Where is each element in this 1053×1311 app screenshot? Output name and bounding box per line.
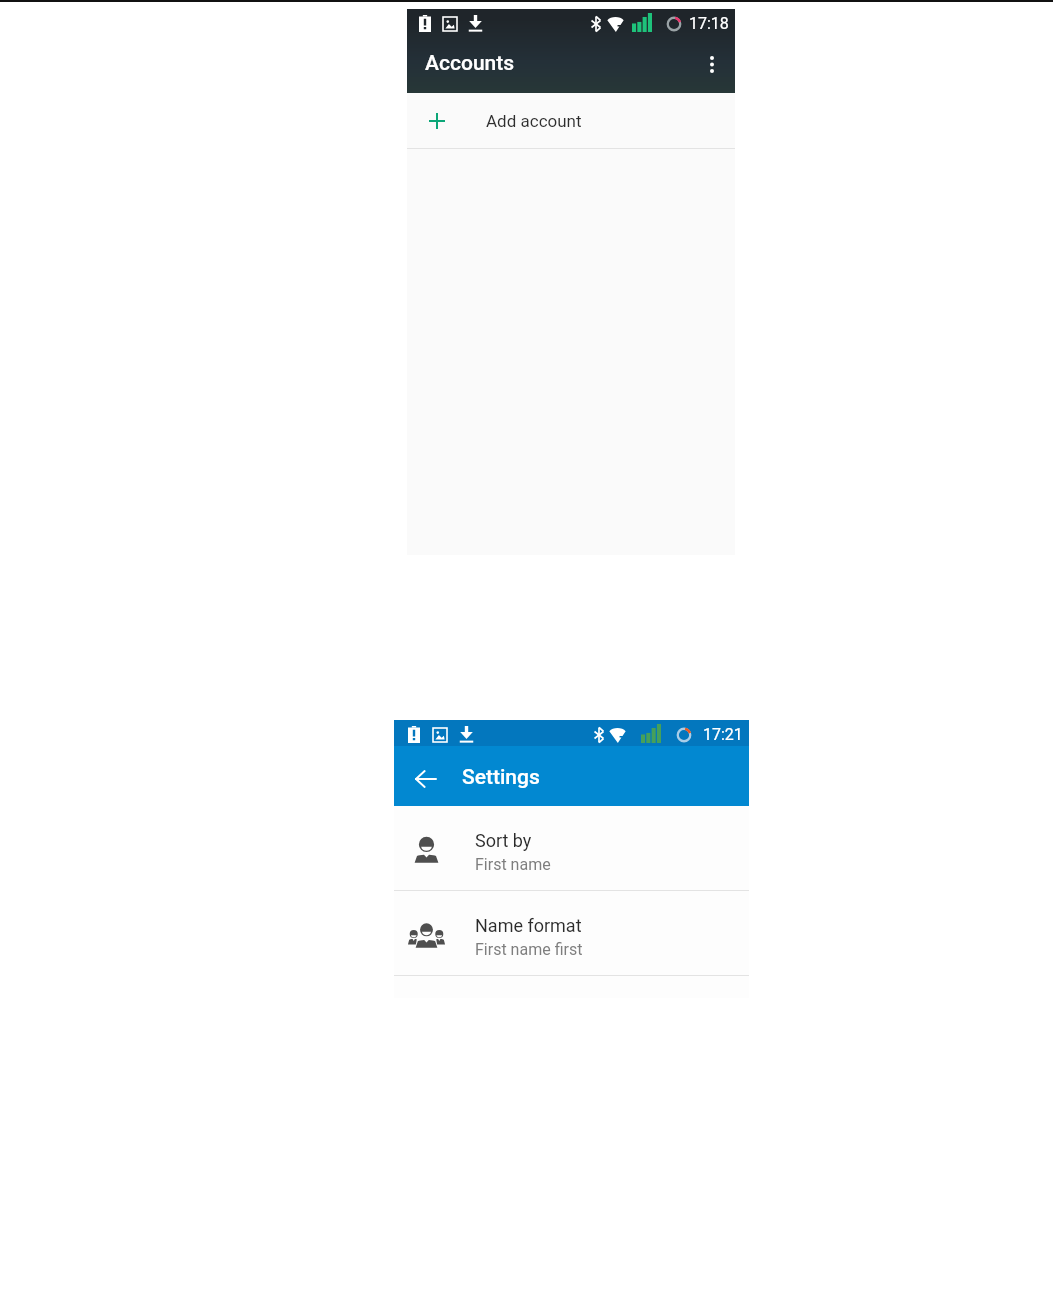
- staticText: First name first: [475, 940, 583, 959]
- staticText: First name: [475, 855, 551, 874]
- staticText: Settings: [462, 765, 540, 790]
- staticText: Accounts: [425, 51, 515, 76]
- button[interactable]: Back: [406, 760, 444, 798]
- staticText: Add account: [486, 111, 582, 131]
- button[interactable]: More options: [697, 42, 727, 86]
- button[interactable]: Sort by: [394, 806, 749, 890]
- staticText: 17:21: [703, 725, 743, 744]
- staticText: Sort by: [475, 830, 532, 851]
- button[interactable]: Add account: [407, 93, 735, 148]
- button[interactable]: Name format: [394, 891, 749, 975]
- staticText: 17:18: [689, 14, 729, 33]
- staticText: Name format: [475, 915, 582, 936]
